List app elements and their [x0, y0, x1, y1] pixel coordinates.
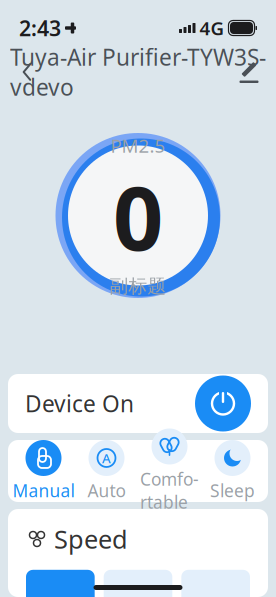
staticText: PM2.5	[110, 133, 165, 158]
staticText: Manual	[12, 479, 74, 502]
staticText: Tuya-Air Purifier-TYW3S-vdevo	[10, 42, 266, 102]
staticText: 2:43	[19, 14, 61, 42]
staticText: Auto	[87, 479, 125, 502]
button[interactable]: Speed level	[26, 570, 95, 597]
button[interactable]: A	[75, 440, 138, 502]
staticText: Device On	[25, 388, 134, 418]
staticText: A	[102, 449, 111, 467]
button[interactable]: Comfortable	[138, 440, 201, 502]
staticText: 4G	[199, 16, 224, 40]
button[interactable]: Back	[5, 50, 49, 94]
button[interactable]: Power	[195, 375, 251, 431]
staticText: Speed	[54, 522, 128, 556]
button[interactable]: Edit	[227, 50, 271, 94]
staticText: Sleep	[210, 479, 255, 502]
button[interactable]: Sleep	[201, 440, 264, 502]
button[interactable]: Manual	[12, 440, 75, 502]
staticText: 副标题	[109, 275, 166, 298]
staticText: Comfortable	[140, 467, 199, 513]
button[interactable]: Speed level	[181, 570, 250, 597]
button[interactable]: Speed level	[104, 570, 172, 597]
staticText: 0	[113, 158, 163, 275]
